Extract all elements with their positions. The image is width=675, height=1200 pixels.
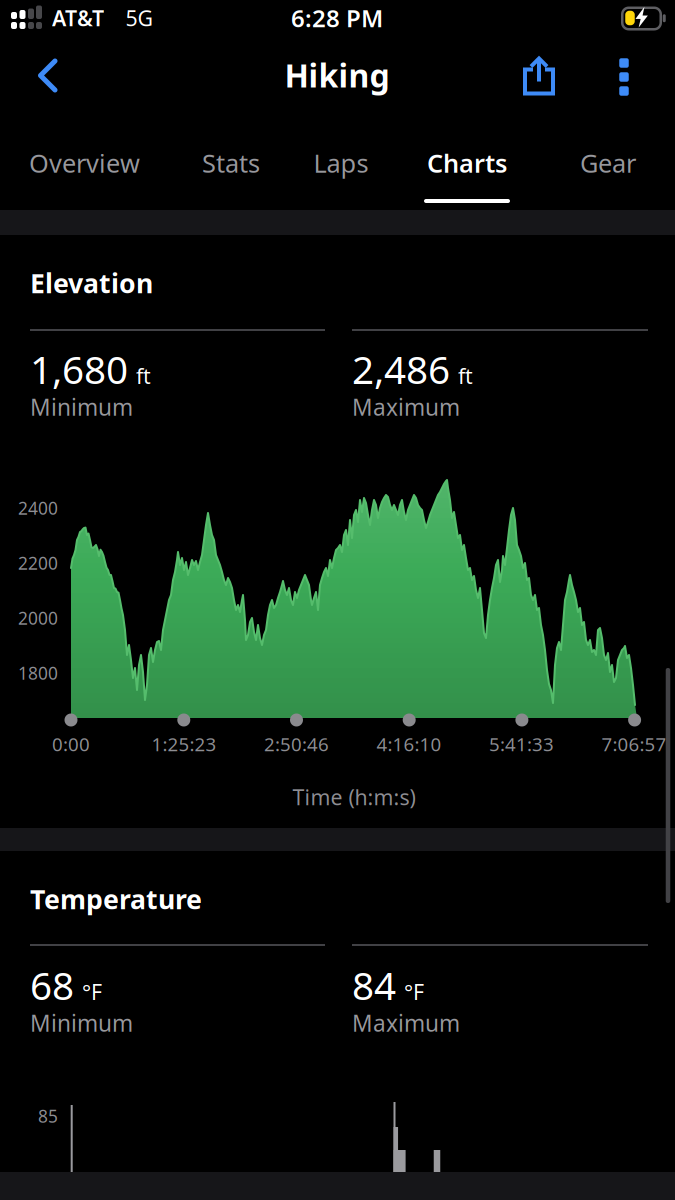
staticText: ft (458, 362, 473, 390)
staticText: 0:00 (52, 732, 90, 756)
staticText: 1,680 (30, 343, 128, 395)
staticText: 85 (38, 1104, 58, 1127)
staticText: Charts (427, 146, 507, 180)
button[interactable]: Back (26, 54, 70, 98)
button[interactable]: Gear (580, 133, 636, 193)
staticText: Stats (202, 146, 260, 180)
staticText: Minimum (30, 392, 133, 422)
staticText: 84 (352, 959, 396, 1011)
staticText: 2200 (18, 551, 58, 574)
staticText: 6:28 PM (291, 2, 383, 34)
staticText: 4:16:10 (376, 732, 441, 756)
staticText: 1800 (18, 661, 58, 684)
staticText: ft (136, 362, 151, 390)
staticText: 2000 (18, 606, 58, 629)
staticText: Elevation (30, 265, 153, 301)
staticText: Minimum (30, 1008, 133, 1038)
staticText: Overview (29, 146, 140, 180)
staticText: Maximum (352, 392, 460, 422)
staticText: Hiking (284, 54, 389, 96)
button[interactable]: Share (517, 54, 561, 98)
staticText: 7:06:57 (601, 732, 666, 756)
button[interactable]: Charts (427, 133, 507, 193)
staticText: 2400 (18, 496, 58, 519)
staticText: 2,486 (352, 343, 450, 395)
staticText: 1:25:23 (151, 732, 216, 756)
staticText: AT&T (52, 4, 104, 32)
staticText: 5:41:33 (489, 732, 554, 756)
staticText: Gear (580, 146, 636, 180)
staticText: Time (h:m:s) (292, 783, 415, 811)
staticText: 2:50:46 (264, 732, 329, 756)
staticText: 68 (30, 959, 74, 1011)
staticText: Laps (313, 146, 368, 180)
button[interactable]: Laps (313, 133, 368, 193)
button[interactable]: Stats (202, 133, 260, 193)
staticText: Temperature (30, 881, 202, 917)
button[interactable]: Overview (29, 133, 140, 193)
staticText: 5G (125, 4, 153, 32)
staticText: °F (404, 978, 424, 1006)
staticText: °F (82, 978, 102, 1006)
button[interactable]: More (604, 55, 644, 99)
staticText: Maximum (352, 1008, 460, 1038)
